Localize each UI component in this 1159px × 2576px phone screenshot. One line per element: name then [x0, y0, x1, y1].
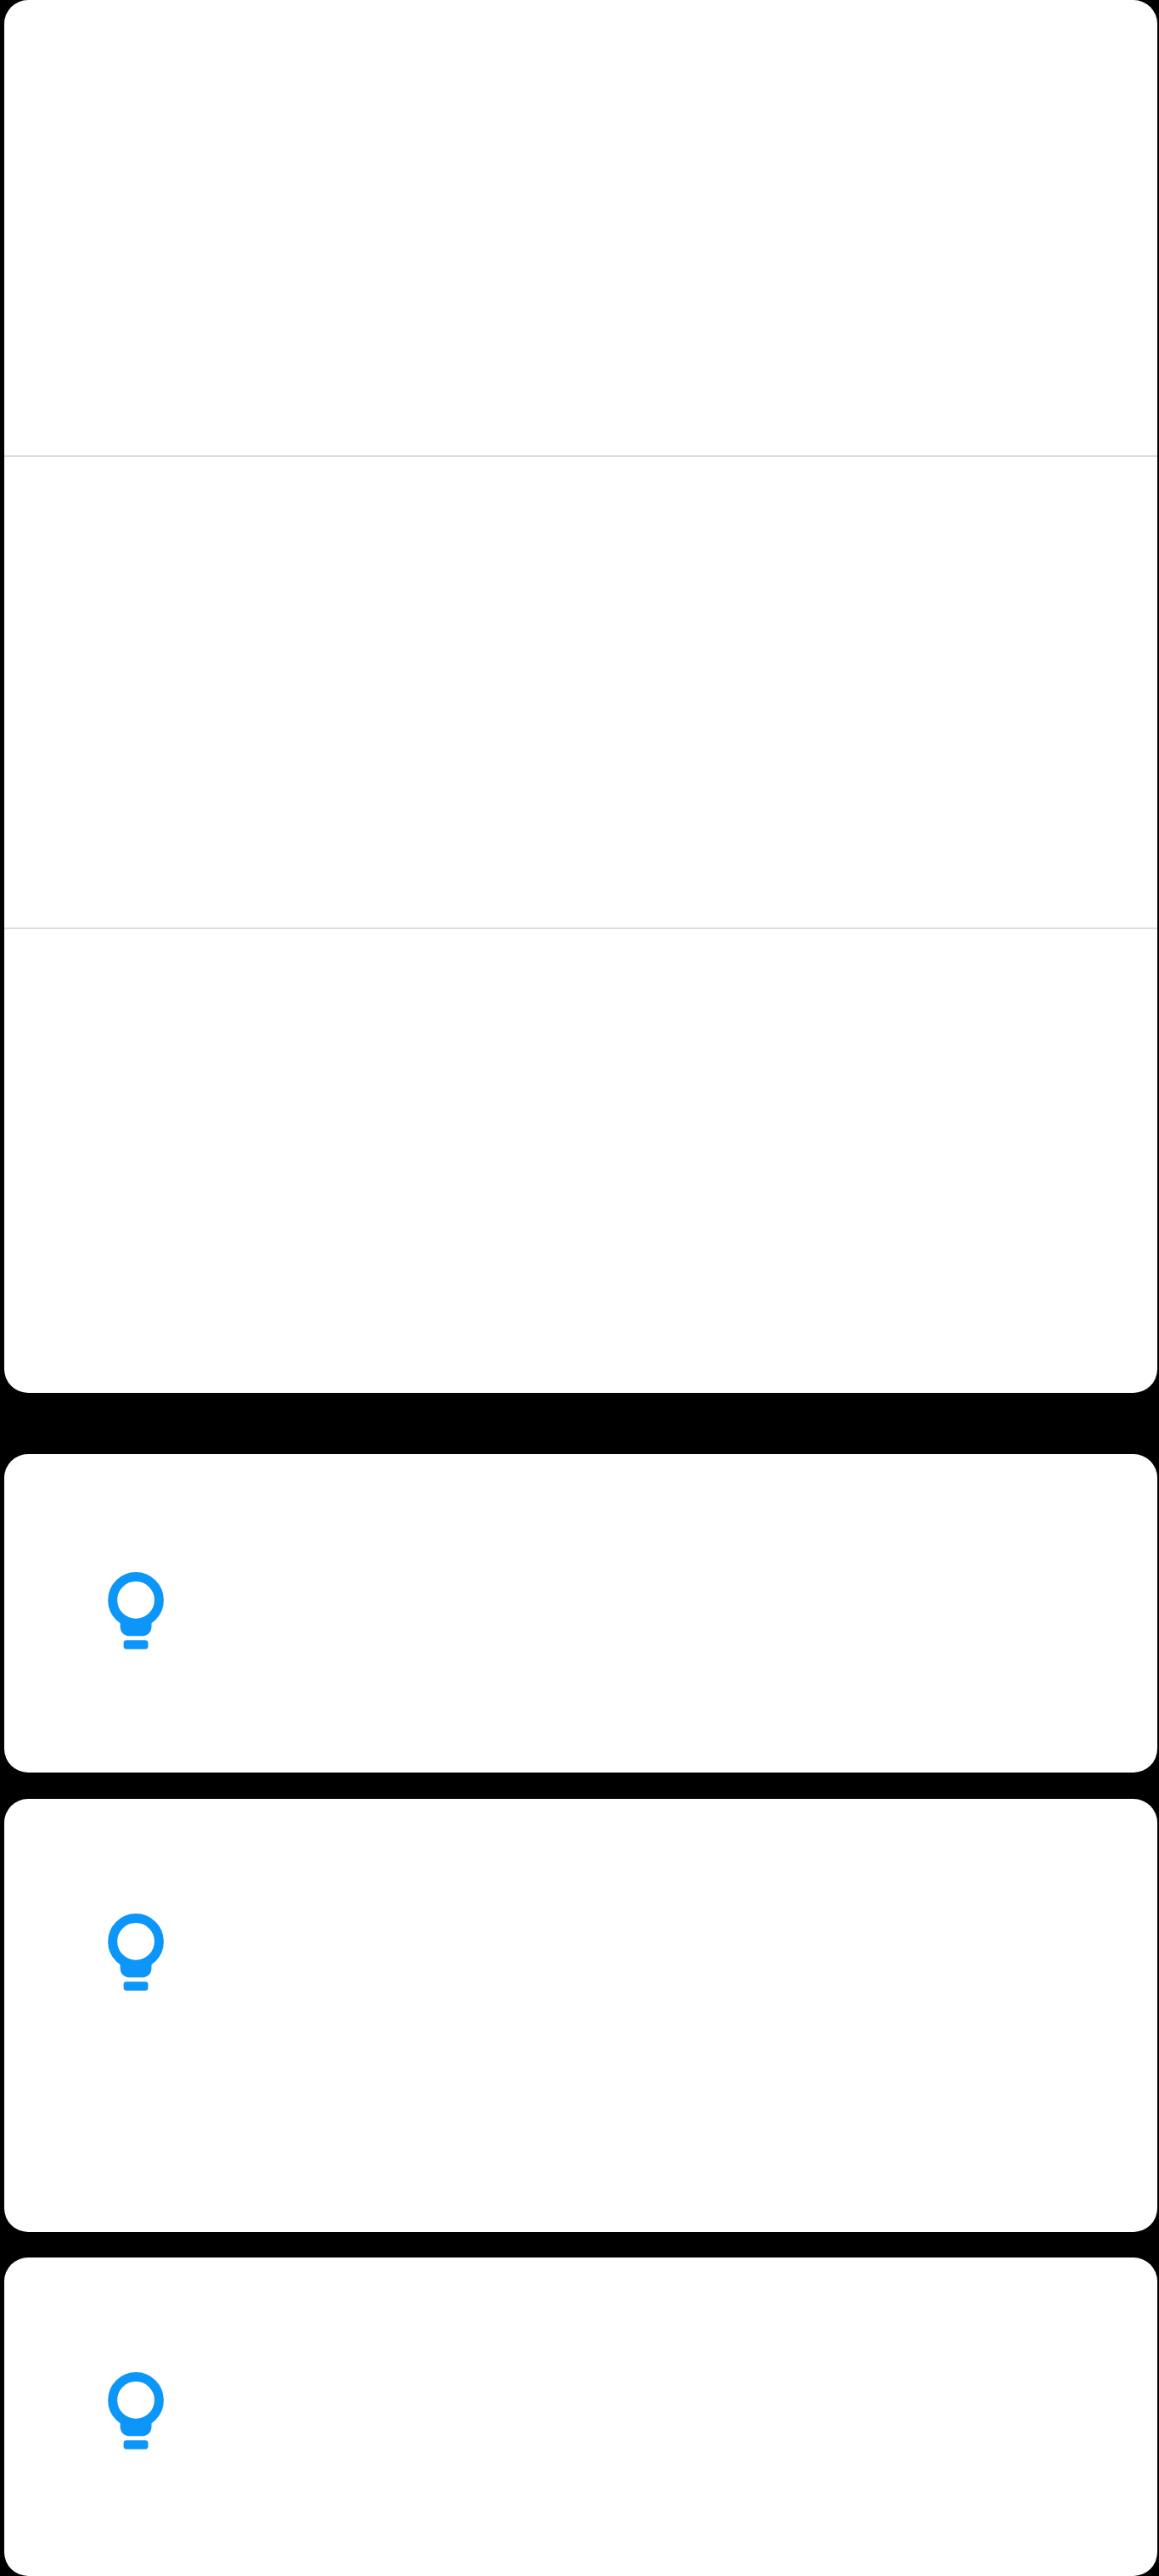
button[interactable]: Tip 3 [4, 2258, 1157, 2576]
button[interactable]: Tip 1 [4, 1454, 1157, 1773]
button[interactable] [4, 0, 1157, 455]
button[interactable] [4, 929, 1157, 1393]
button[interactable]: Tip 2 [4, 1799, 1157, 2232]
button[interactable] [4, 457, 1157, 927]
